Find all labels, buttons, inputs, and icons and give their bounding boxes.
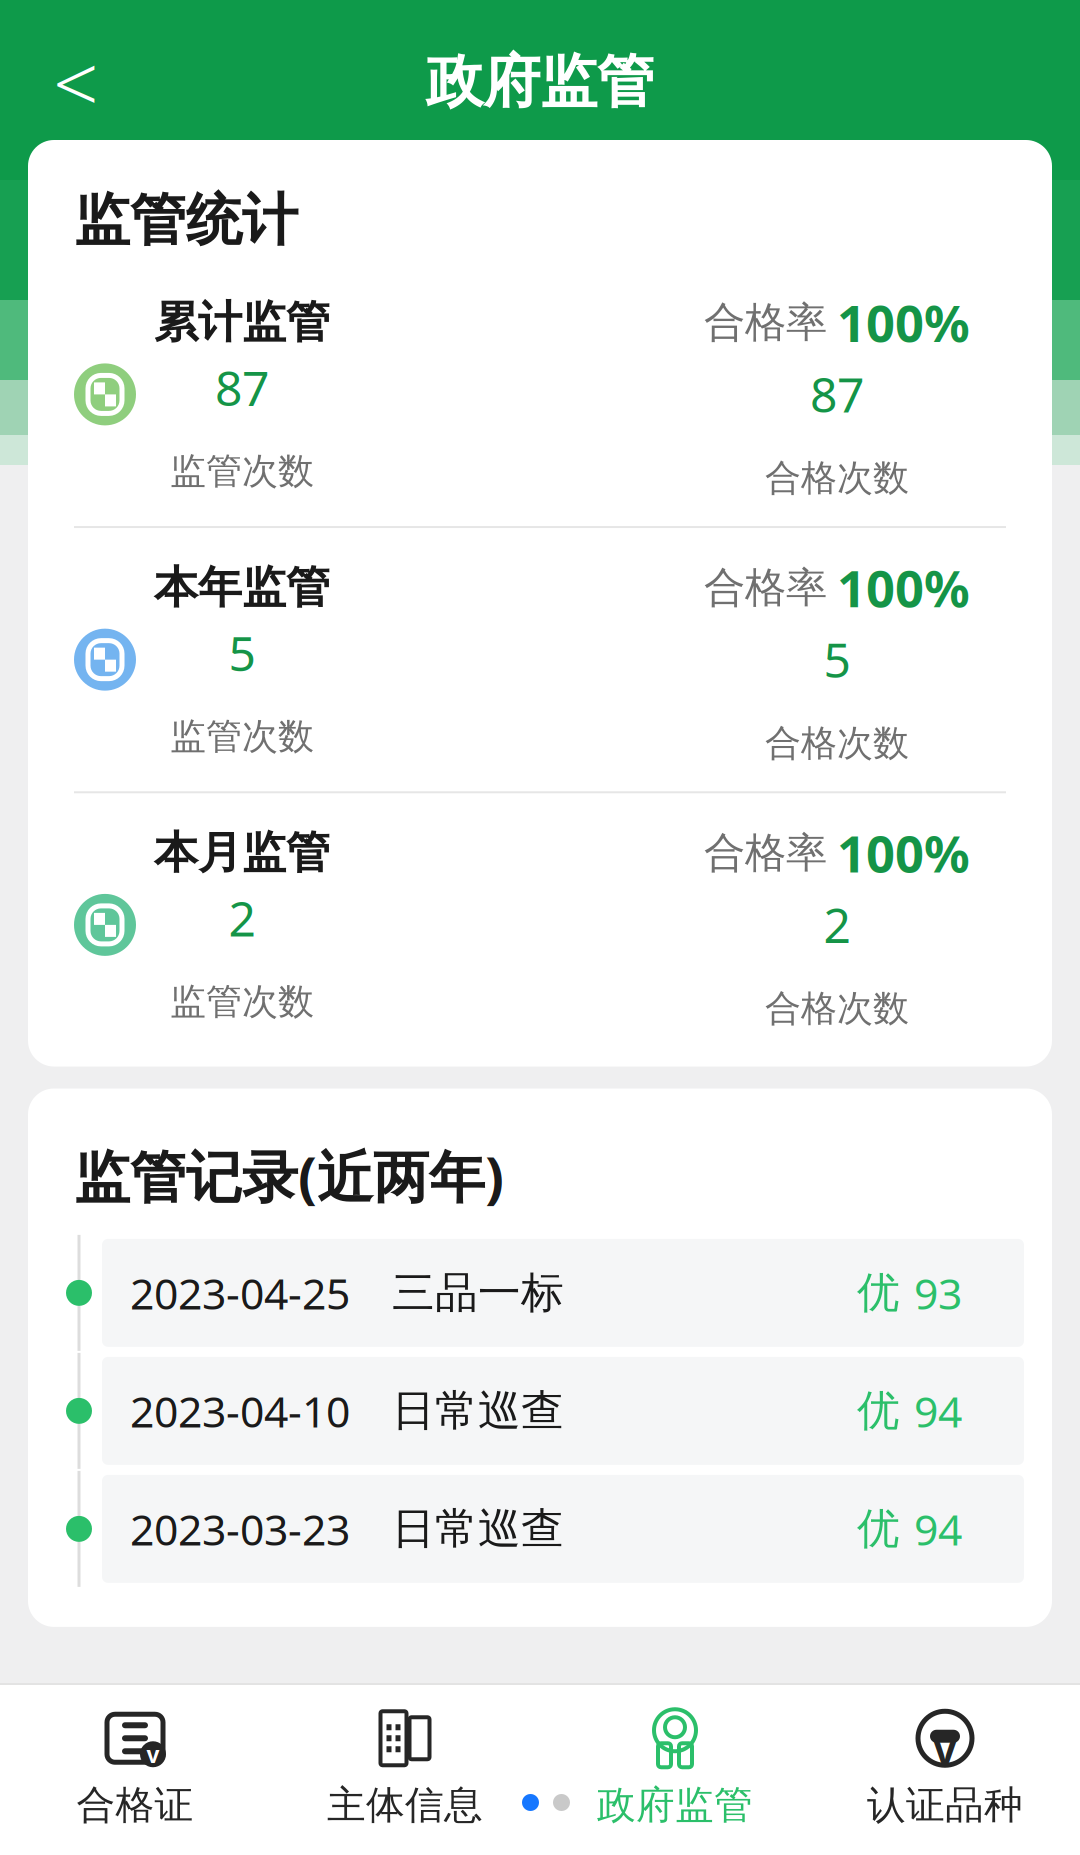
staticText: 合格证 (76, 1781, 193, 1829)
staticText: v (146, 1739, 159, 1769)
staticText: 87 (215, 355, 269, 419)
staticText: 合格率 (704, 562, 827, 613)
staticText: 监管次数 (170, 449, 314, 493)
staticText: 2 (228, 886, 255, 950)
staticText: V (932, 1723, 958, 1776)
staticText: < (53, 29, 99, 135)
staticText: 合格率 (704, 827, 827, 878)
staticText: 93 (914, 1265, 962, 1321)
staticText: 合格次数 (765, 721, 909, 765)
staticText: 合格次数 (765, 456, 909, 500)
staticText: 2023-04-10 (130, 1383, 350, 1439)
staticText: 监管次数 (170, 980, 314, 1024)
staticText: 日常巡查 (392, 1385, 564, 1437)
button[interactable]: V (810, 1689, 1080, 1849)
staticText: 合格率 (704, 297, 827, 348)
staticText: 本年监管 (154, 561, 330, 615)
staticText: 优 (857, 1267, 900, 1319)
staticText: 100% (837, 554, 970, 621)
staticText: 监管统计 (74, 186, 298, 255)
button[interactable]: 主体信息 (270, 1689, 540, 1849)
staticText: 政府监管 (426, 47, 654, 117)
button[interactable]: v (0, 1689, 270, 1849)
staticText: 5 (228, 621, 255, 684)
staticText: 94 (914, 1383, 962, 1439)
staticText: 累计监管 (154, 295, 330, 349)
button[interactable]: 2023-04-10 (56, 1353, 1024, 1469)
staticText: 优 (857, 1385, 900, 1437)
staticText: 本月监管 (154, 826, 330, 880)
staticText: 5 (823, 627, 850, 691)
staticText: 监管记录(近两年) (74, 1138, 504, 1213)
staticText: 合格次数 (765, 986, 909, 1030)
button[interactable]: 2023-04-25 (56, 1235, 1024, 1351)
staticText: 政府监管 (597, 1781, 753, 1829)
staticText: 87 (810, 362, 864, 426)
staticText: 2023-04-25 (130, 1265, 350, 1321)
staticText: 2023-03-23 (130, 1501, 350, 1557)
staticText: 2 (823, 893, 850, 956)
button[interactable]: Back (28, 34, 124, 130)
button[interactable]: 2023-03-23 (56, 1471, 1024, 1587)
staticText: 监管次数 (170, 714, 314, 759)
staticText: 94 (914, 1501, 962, 1557)
staticText: 优 (857, 1503, 900, 1555)
staticText: 100% (837, 819, 970, 887)
staticText: 三品一标 (392, 1267, 564, 1319)
staticText: 认证品种 (867, 1781, 1023, 1829)
button[interactable]: 政府监管 (540, 1689, 810, 1849)
staticText: 100% (837, 289, 970, 356)
staticText: 主体信息 (327, 1781, 483, 1829)
staticText: 日常巡查 (392, 1503, 564, 1555)
